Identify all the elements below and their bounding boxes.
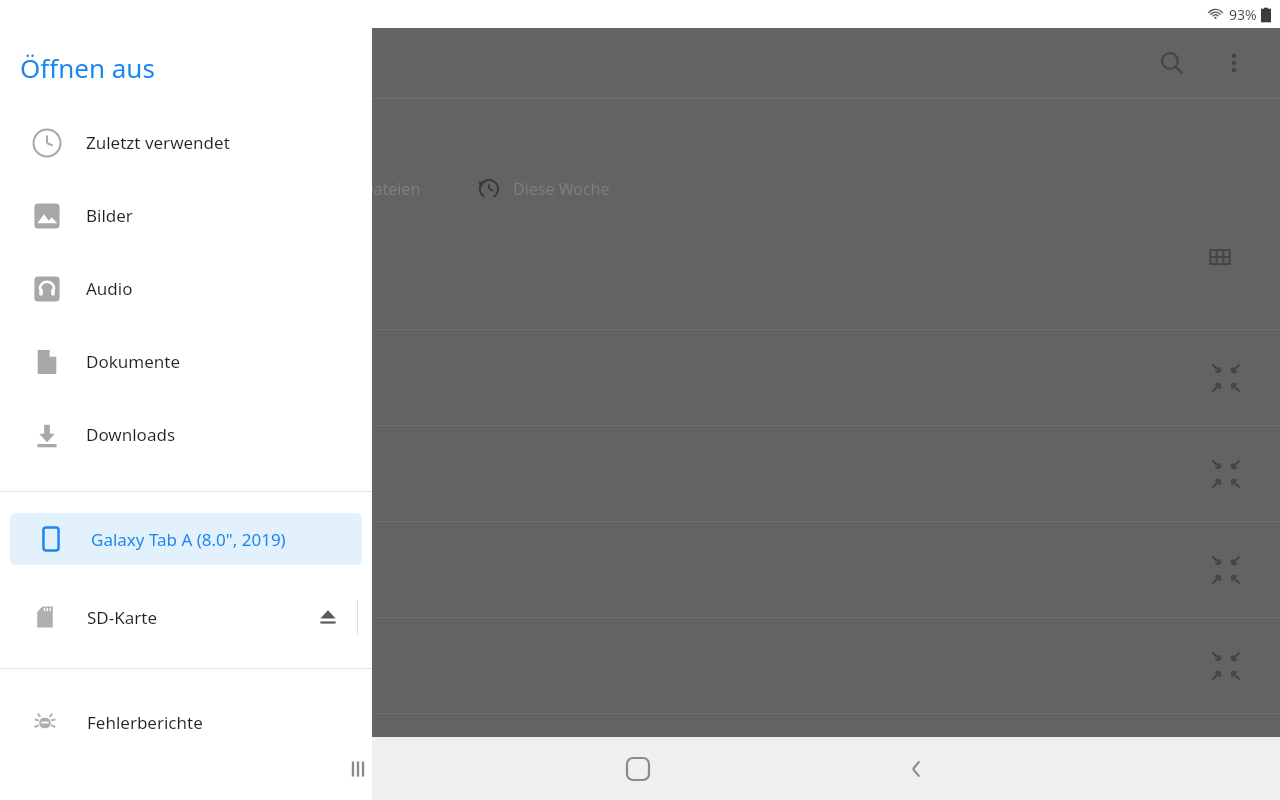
button[interactable]: Zuletzt verwendet (0, 106, 372, 179)
button[interactable]: Downloads (0, 398, 372, 471)
button[interactable]: Fehlerberichte (0, 696, 372, 748)
staticText: Audio (86, 277, 133, 300)
staticText: Dokumente (86, 350, 180, 373)
button[interactable]: Recent apps (335, 746, 381, 792)
button[interactable]: Galaxy Tab A (8.0", 2019) (10, 513, 362, 565)
button[interactable]: Diese Woche (457, 167, 630, 210)
staticText: Öffnen aus (20, 50, 155, 85)
button[interactable]: Dokumente (0, 325, 372, 398)
button[interactable]: SD-Karte (0, 591, 372, 643)
button[interactable]: Große Dateien (255, 167, 441, 210)
button[interactable]: More options (1210, 39, 1258, 87)
staticText: Diese Woche (513, 178, 610, 200)
button[interactable]: Search (1148, 39, 1196, 87)
staticText: Downloads (86, 423, 176, 446)
button[interactable]: Eject SD card (306, 595, 350, 639)
button[interactable]: Grid view (1200, 237, 1240, 277)
button[interactable]: Bilder (0, 179, 372, 252)
button[interactable] (0, 330, 1280, 425)
staticText: SD-Karte (87, 606, 158, 629)
staticText: Große Dateien (311, 178, 421, 200)
button[interactable] (0, 618, 1280, 713)
staticText: Fehlerberichte (87, 711, 203, 734)
button[interactable] (0, 426, 1280, 521)
staticText: Galaxy Tab A (8.0", 2019) (91, 528, 286, 551)
staticText: Bilder (86, 204, 133, 227)
staticText: 93% (1229, 5, 1257, 24)
button[interactable]: Audio (0, 252, 372, 325)
button[interactable]: Home (614, 745, 662, 793)
button[interactable]: Back (893, 745, 941, 793)
staticText: Zuletzt verwendet (86, 131, 230, 154)
button[interactable] (0, 522, 1280, 617)
